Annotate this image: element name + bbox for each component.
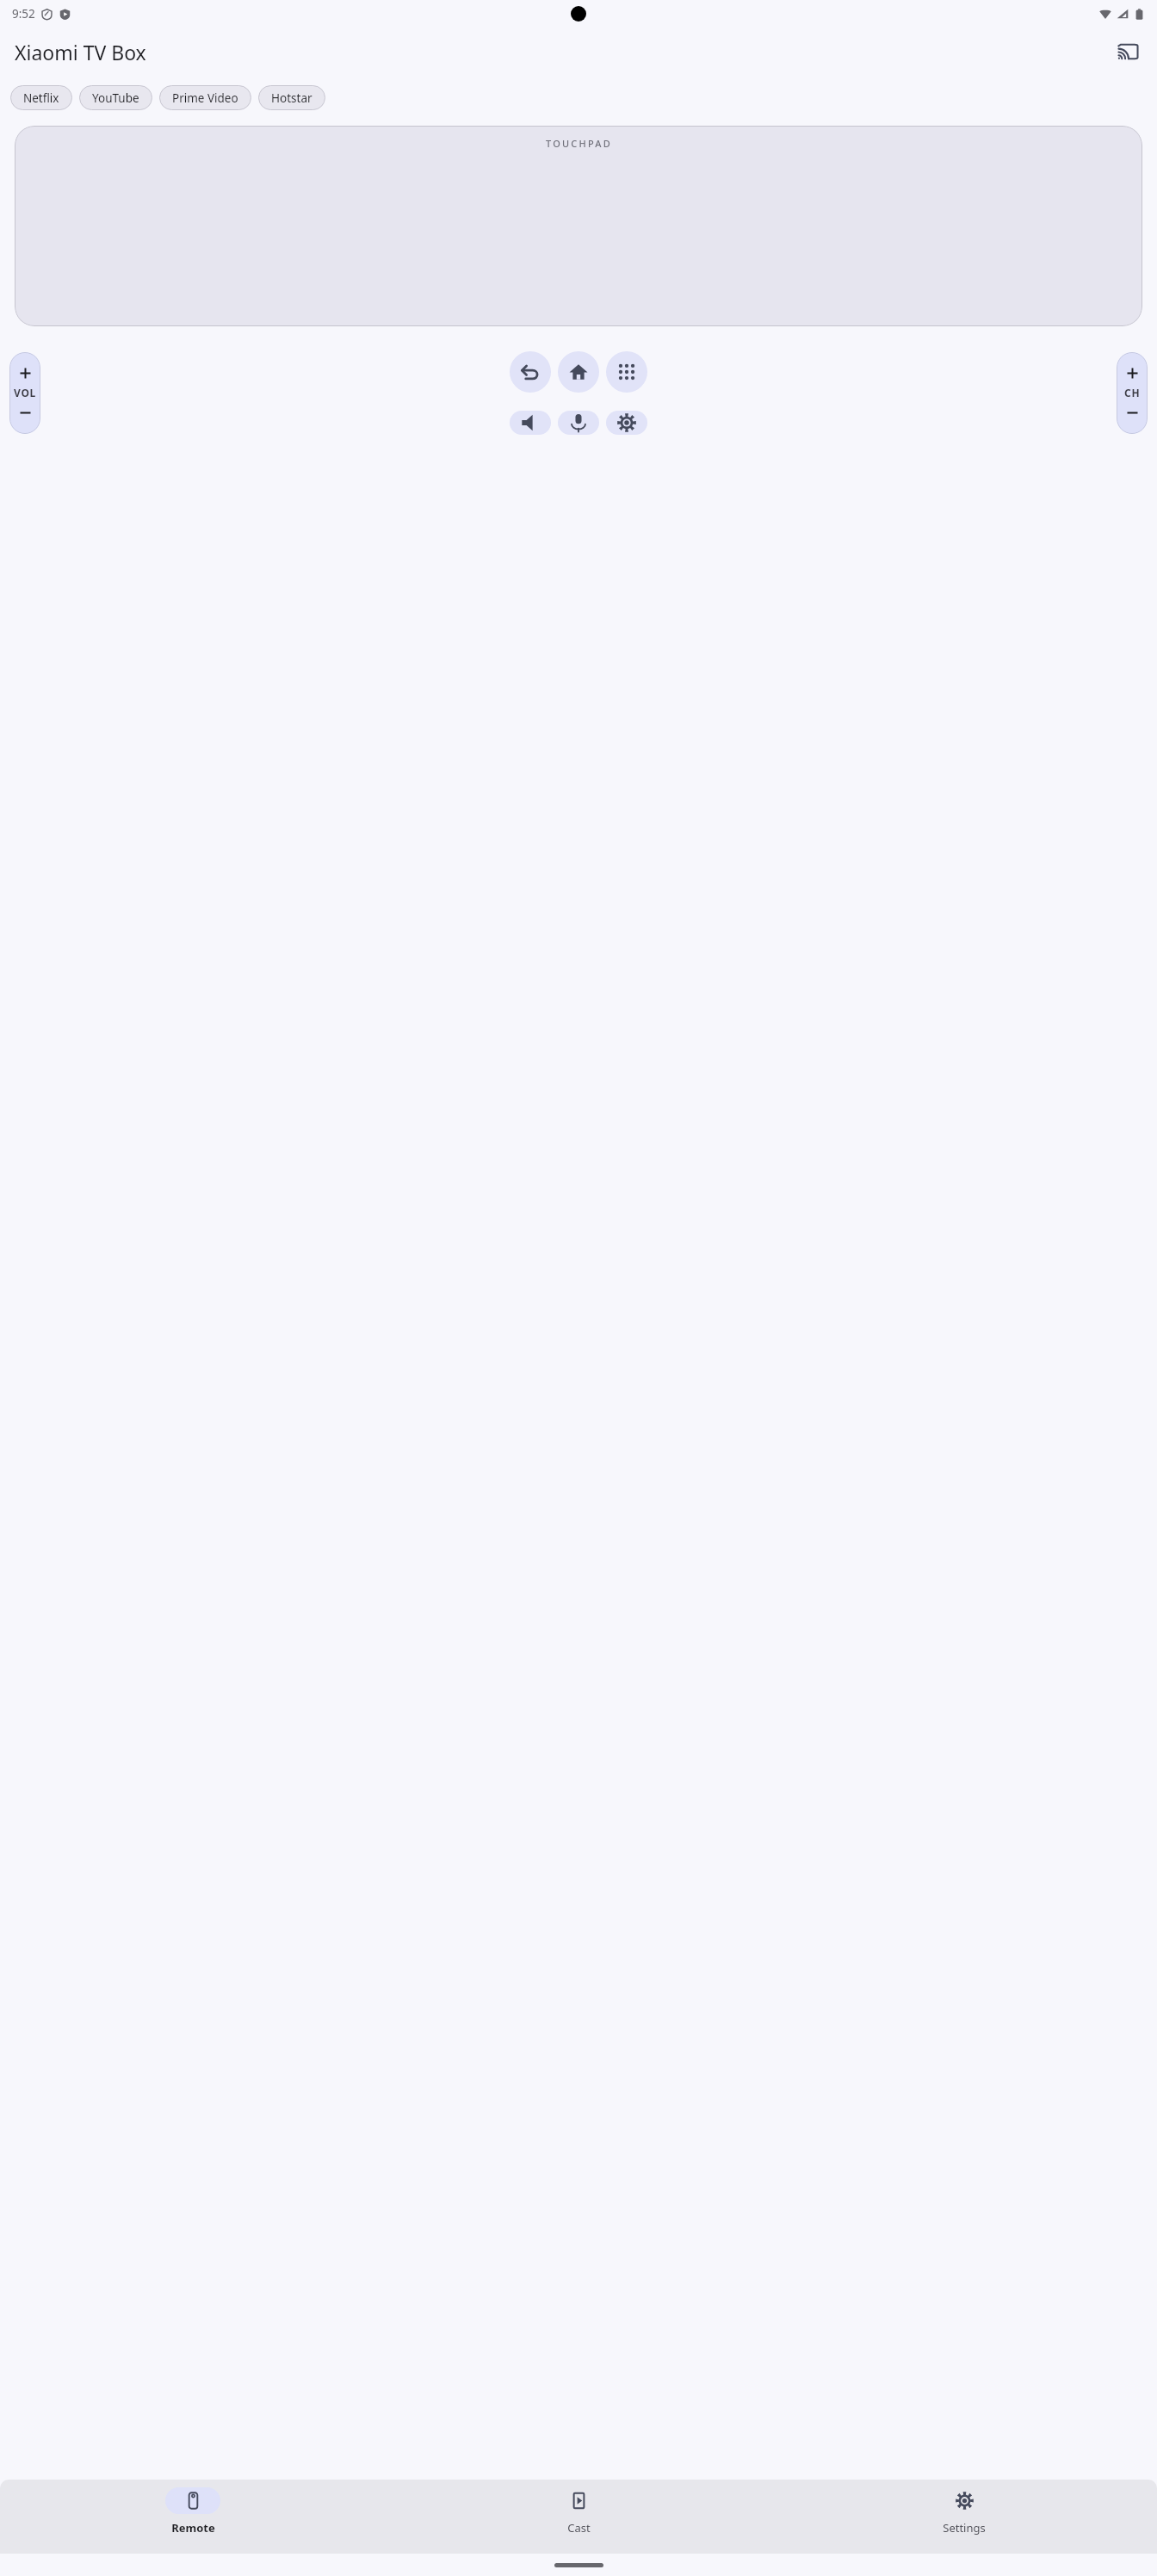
staticText: Remote bbox=[171, 2520, 215, 2536]
button[interactable]: Back bbox=[510, 351, 551, 393]
staticText: Prime Video bbox=[172, 90, 238, 106]
button[interactable]: Cast bbox=[1109, 33, 1147, 71]
button[interactable]: Remote bbox=[0, 2480, 386, 2554]
staticText: Settings bbox=[943, 2520, 986, 2536]
button[interactable]: CH bbox=[1117, 352, 1148, 434]
staticText: YouTube bbox=[92, 90, 139, 106]
button[interactable]: Voice search bbox=[558, 411, 599, 435]
button[interactable]: Netflix bbox=[10, 85, 72, 110]
staticText: VOL bbox=[14, 386, 36, 399]
button[interactable]: Settings bbox=[606, 411, 647, 435]
button[interactable]: Settings bbox=[771, 2480, 1157, 2554]
staticText: Netflix bbox=[23, 90, 59, 106]
button[interactable]: Cast bbox=[386, 2480, 771, 2554]
button[interactable]: TOUCHPAD bbox=[15, 126, 1142, 326]
button[interactable]: Hotstar bbox=[258, 85, 325, 110]
button[interactable]: Home bbox=[558, 351, 599, 393]
button[interactable]: Prime Video bbox=[159, 85, 251, 110]
staticText: 9:52 bbox=[12, 6, 35, 22]
button[interactable]: Apps bbox=[606, 351, 647, 393]
button[interactable]: Mute bbox=[510, 411, 551, 435]
staticText: CH bbox=[1124, 386, 1141, 399]
staticText: TOUCHPAD bbox=[546, 137, 612, 150]
button[interactable]: VOL bbox=[9, 352, 40, 434]
staticText: Cast bbox=[567, 2520, 591, 2536]
staticText: Hotstar bbox=[271, 90, 312, 106]
staticText: Xiaomi TV Box bbox=[15, 39, 146, 65]
button[interactable]: YouTube bbox=[79, 85, 152, 110]
